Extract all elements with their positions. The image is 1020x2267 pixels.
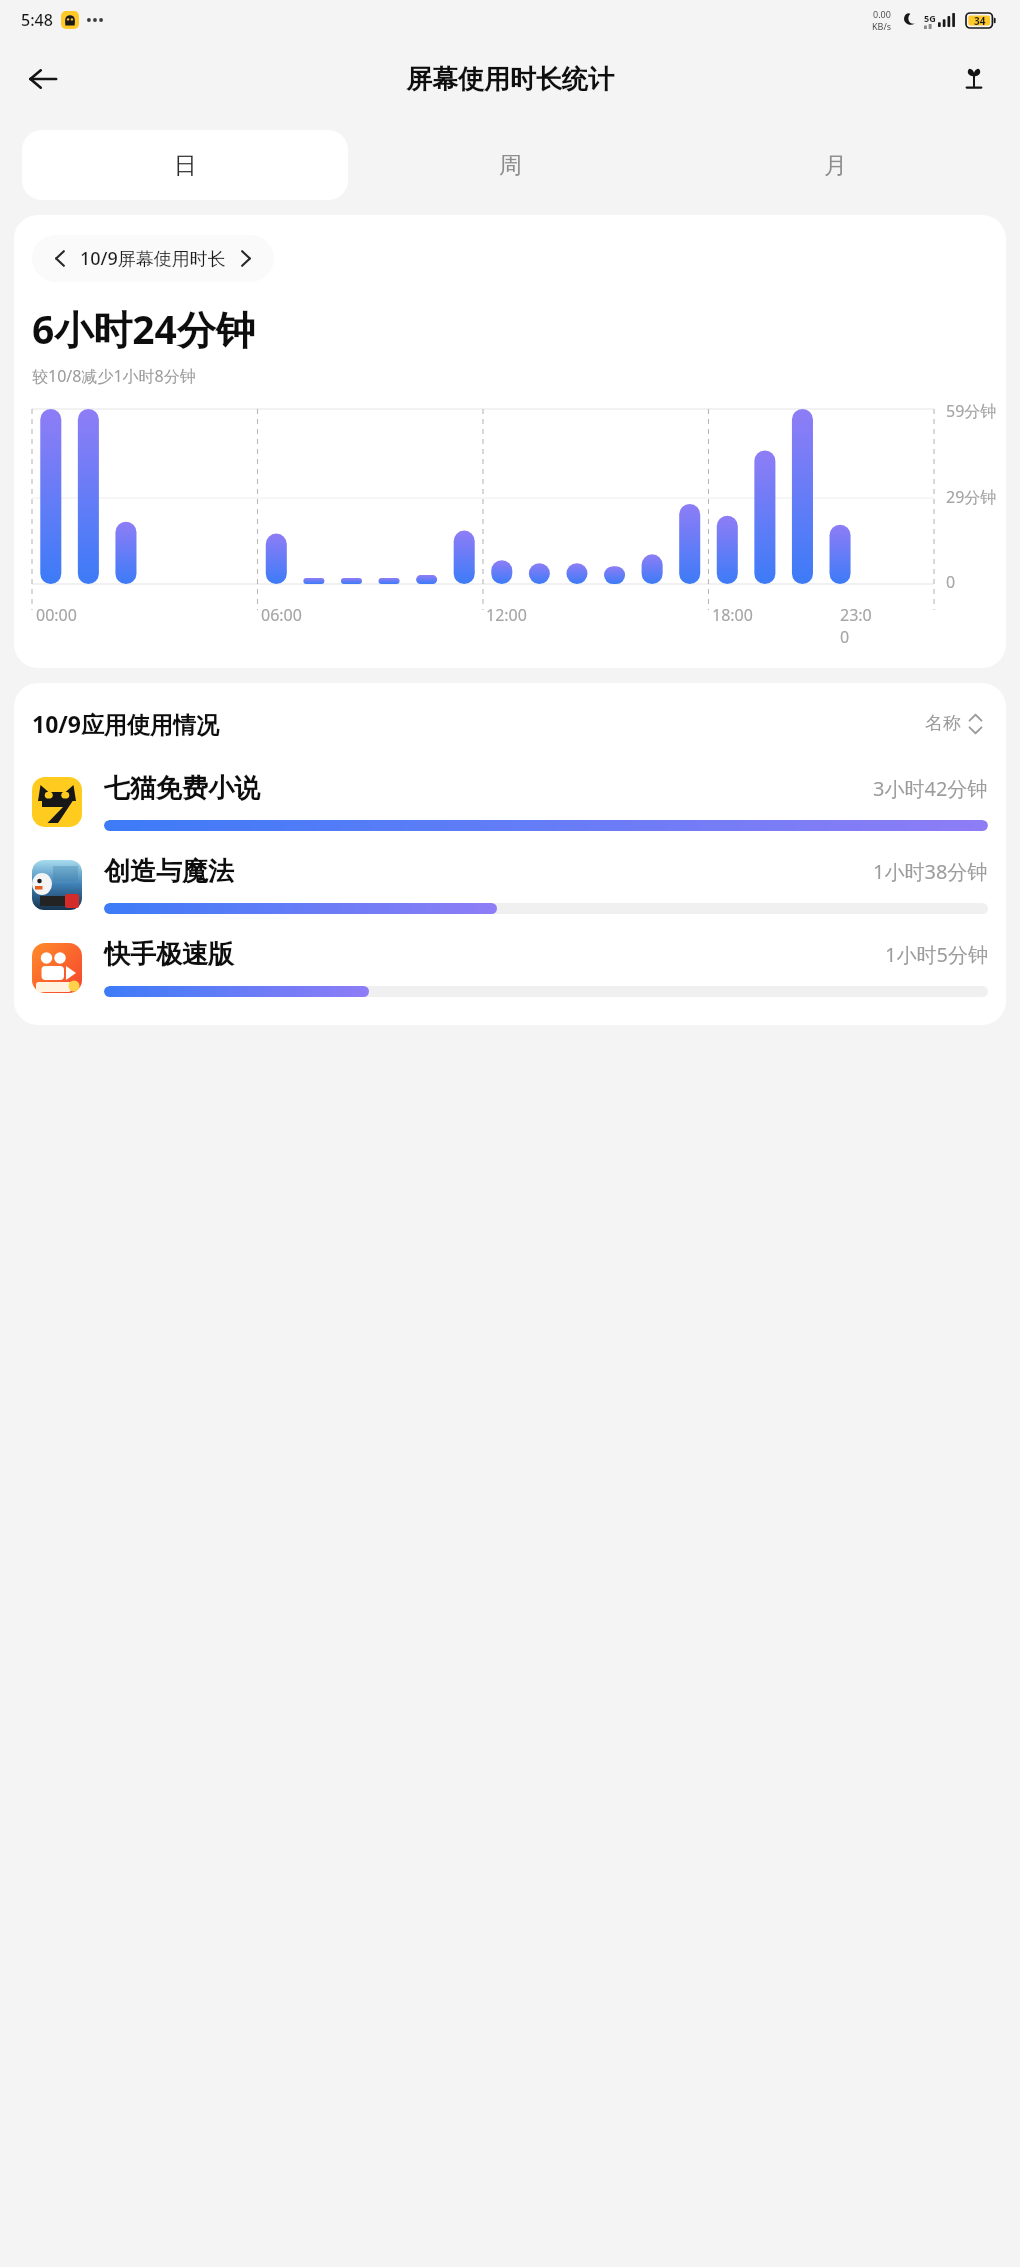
staticText: 06:00 xyxy=(261,604,302,626)
staticText: 1小时5分钟 xyxy=(885,941,988,968)
staticText: 34 xyxy=(974,14,986,28)
staticText: 6小时24分钟 xyxy=(32,302,255,355)
staticText: 1小时38分钟 xyxy=(873,858,988,885)
staticText: 5:48 xyxy=(21,9,53,31)
button[interactable]: Focus mode xyxy=(948,53,1000,105)
staticText: 23:00 xyxy=(840,604,878,648)
button[interactable]: 创造与魔法 xyxy=(14,843,1006,926)
staticText: 七猫免费小说 xyxy=(104,772,260,805)
button[interactable]: 周 xyxy=(348,130,673,200)
staticText: 00:00 xyxy=(36,604,77,626)
button[interactable]: Back xyxy=(16,52,70,106)
staticText: 0 xyxy=(946,571,956,593)
staticText: 29分钟 xyxy=(946,486,997,508)
staticText: KB/s xyxy=(872,20,892,32)
staticText: 屏幕使用时长统计 xyxy=(406,63,614,96)
staticText: 名称 xyxy=(925,712,961,735)
staticText: 较10/8减少1小时8分钟 xyxy=(32,365,196,387)
staticText: 0.00 xyxy=(873,8,891,20)
staticText: 12:00 xyxy=(486,604,527,626)
staticText: 5G xyxy=(924,12,936,24)
staticText: 日 xyxy=(174,151,197,180)
button[interactable]: 日 xyxy=(22,130,348,200)
staticText: 创造与魔法 xyxy=(104,855,234,888)
staticText: 59分钟 xyxy=(946,400,997,422)
staticText: 快手极速版 xyxy=(104,938,234,971)
button[interactable]: 快手极速版 xyxy=(14,926,1006,1009)
staticText: 周 xyxy=(499,151,522,180)
button[interactable]: 七猫免费小说 xyxy=(14,760,1006,843)
button[interactable]: 10/9屏幕使用时长 xyxy=(32,235,274,282)
button[interactable]: 名称 xyxy=(920,707,988,740)
staticText: 10/9应用使用情况 xyxy=(32,708,220,739)
button[interactable]: 月 xyxy=(673,130,998,200)
staticText: 18:00 xyxy=(712,604,753,626)
staticText: 月 xyxy=(824,151,847,180)
staticText: 10/9屏幕使用时长 xyxy=(80,246,226,271)
staticText: 3小时42分钟 xyxy=(873,775,988,802)
